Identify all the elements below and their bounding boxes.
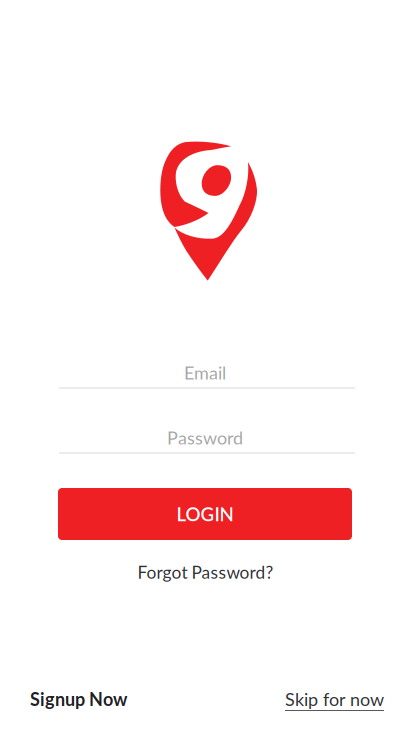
button[interactable]: Signup Now — [30, 684, 127, 714]
staticText: Password — [167, 427, 243, 448]
button[interactable]: LOGIN — [58, 488, 352, 540]
staticText: Forgot Password? — [137, 562, 273, 582]
staticText: LOGIN — [176, 503, 233, 525]
staticText: Signup Now — [30, 688, 127, 710]
button[interactable]: Forgot Password? — [105, 557, 305, 587]
staticText: Skip for now — [285, 688, 384, 710]
staticText: Email — [184, 362, 226, 383]
button[interactable]: Password — [59, 413, 355, 454]
button[interactable]: Email — [59, 348, 355, 389]
button[interactable]: Skip for now — [285, 684, 384, 714]
